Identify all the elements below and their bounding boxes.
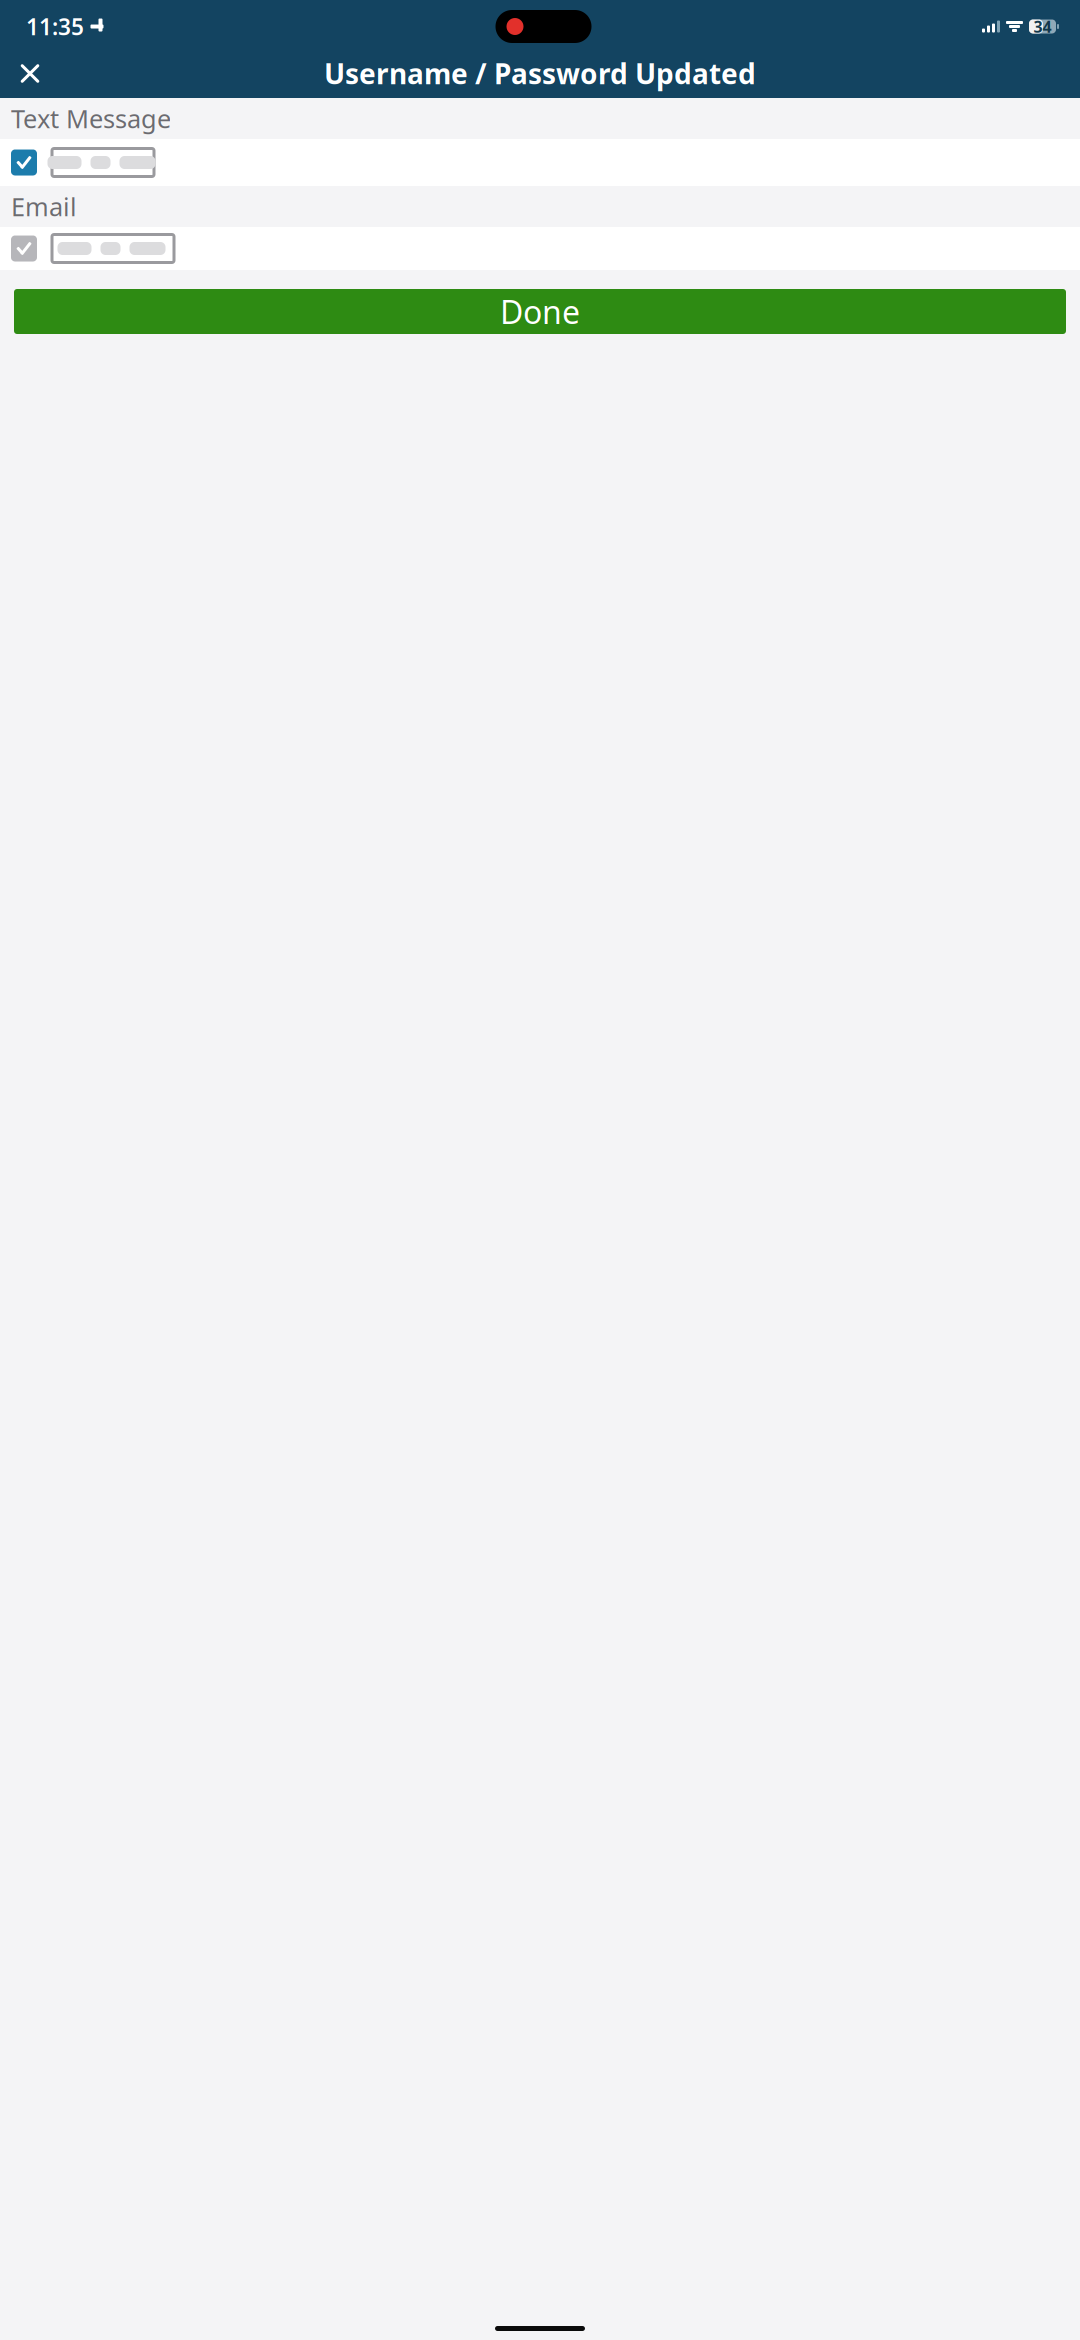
button[interactable]: Text message recipient [0,139,1080,186]
staticText: Username / Password Updated [324,55,756,92]
button[interactable]: Email recipient [0,227,1080,270]
button[interactable]: Close [7,50,53,96]
button[interactable]: Done [14,289,1066,334]
staticText: 34 [1033,16,1051,37]
staticText: Text Message [11,102,171,135]
staticText: Email [11,190,77,223]
staticText: Done [500,290,580,333]
staticText: 11:35 [26,11,84,41]
